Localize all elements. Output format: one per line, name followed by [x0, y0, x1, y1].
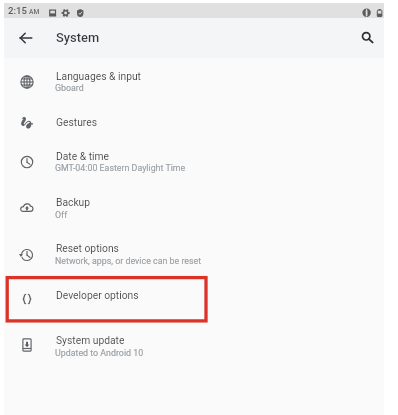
staticText: System update: [56, 334, 125, 346]
staticText: Reset options: [56, 242, 119, 254]
staticText: Gboard: [55, 83, 84, 93]
staticText: Off: [55, 210, 68, 220]
button[interactable]: Search: [352, 23, 382, 53]
staticText: AM: [29, 8, 40, 16]
staticText: System: [56, 30, 100, 45]
staticText: Network, apps, or device can be reset: [55, 256, 202, 266]
button[interactable]: Date & time: [4, 139, 384, 186]
button[interactable]: Backup: [4, 186, 384, 232]
button[interactable]: Reset options: [4, 232, 384, 278]
button[interactable]: Gestures: [4, 105, 384, 139]
staticText: Date & time: [56, 150, 110, 162]
staticText: Backup: [56, 196, 91, 208]
button[interactable]: Developer options: [4, 278, 384, 321]
staticText: Updated to Android 10: [55, 348, 144, 358]
button[interactable]: System update: [4, 321, 384, 367]
button[interactable]: Back: [8, 23, 38, 53]
staticText: 2:15: [8, 5, 27, 16]
staticText: Languages & input: [56, 70, 141, 82]
staticText: Gestures: [56, 116, 98, 128]
staticText: GMT-04:00 Eastern Daylight Time: [55, 163, 186, 173]
staticText: Developer options: [56, 289, 139, 301]
button[interactable]: Languages & input: [4, 59, 384, 105]
